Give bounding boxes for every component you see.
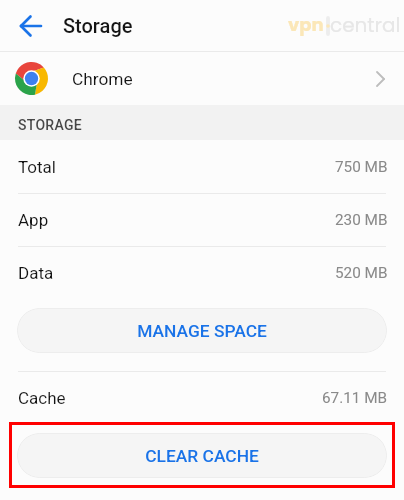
- staticText: Data: [18, 263, 54, 283]
- staticText: STORAGE: [18, 117, 83, 133]
- button[interactable]: CLEAR CACHE: [17, 433, 387, 478]
- button[interactable]: Chrome: [0, 52, 404, 105]
- staticText: MANAGE SPACE: [137, 321, 267, 341]
- staticText: 230 MB: [335, 211, 388, 229]
- button[interactable]: Data: [0, 247, 404, 299]
- staticText: Cache: [18, 388, 66, 408]
- button[interactable]: MANAGE SPACE: [17, 308, 387, 353]
- staticText: 67.11 MB: [322, 389, 388, 407]
- button[interactable]: Total: [0, 140, 404, 193]
- staticText: Chrome: [72, 69, 133, 89]
- staticText: 750 MB: [335, 158, 388, 176]
- staticText: vpn: [288, 12, 324, 37]
- button[interactable]: Open Chrome app info: [368, 67, 392, 91]
- staticText: central: [330, 11, 401, 39]
- button[interactable]: Cache: [0, 372, 404, 424]
- staticText: App: [18, 210, 49, 230]
- button[interactable]: App: [0, 194, 404, 246]
- staticText: 520 MB: [335, 264, 388, 282]
- staticText: CLEAR CACHE: [145, 446, 259, 466]
- staticText: Storage: [63, 14, 133, 37]
- staticText: Total: [18, 157, 56, 177]
- button[interactable]: Back: [13, 8, 49, 44]
